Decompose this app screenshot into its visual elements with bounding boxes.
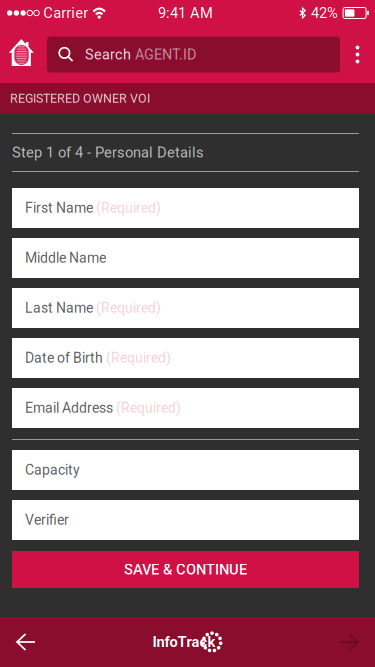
button[interactable]: Verifier (12, 500, 359, 540)
staticText: Step 1 of 4 - Personal Details (12, 144, 204, 161)
staticText: (Required) (103, 350, 171, 366)
staticText: SAVE & CONTINUE (124, 561, 247, 578)
staticText: (Required) (93, 300, 161, 316)
button[interactable]: Date of Birth (12, 338, 359, 378)
button[interactable]: SAVE & CONTINUE (12, 551, 359, 588)
staticText: AGENT.ID (135, 46, 196, 63)
button[interactable]: First Name (12, 188, 359, 228)
button[interactable]: Capacity (12, 450, 359, 490)
staticText: Search (85, 46, 135, 63)
button[interactable]: Previous step (0, 617, 52, 667)
staticText: Email Address (25, 400, 113, 416)
button[interactable]: Last Name (12, 288, 359, 328)
staticText: (Required) (113, 400, 181, 416)
button[interactable]: Email Address (12, 388, 359, 428)
staticText: Carrier (43, 4, 88, 22)
button[interactable]: Home (6, 30, 47, 78)
staticText: Date of Birth (25, 350, 103, 366)
staticText: 9:41 AM (158, 4, 213, 22)
staticText: InfoTrack (152, 633, 215, 651)
staticText: Verifier (25, 512, 69, 528)
staticText: 42% (311, 4, 338, 22)
button[interactable]: Middle Name (12, 238, 359, 278)
staticText: First Name (25, 200, 93, 216)
staticText: (Required) (93, 200, 161, 216)
staticText: Middle Name (25, 250, 106, 266)
staticText: Last Name (25, 300, 93, 316)
staticText: Capacity (25, 462, 80, 478)
staticText: REGISTERED OWNER VOI (10, 91, 150, 106)
button[interactable]: More options (340, 31, 375, 77)
button[interactable]: Next step (323, 617, 375, 667)
